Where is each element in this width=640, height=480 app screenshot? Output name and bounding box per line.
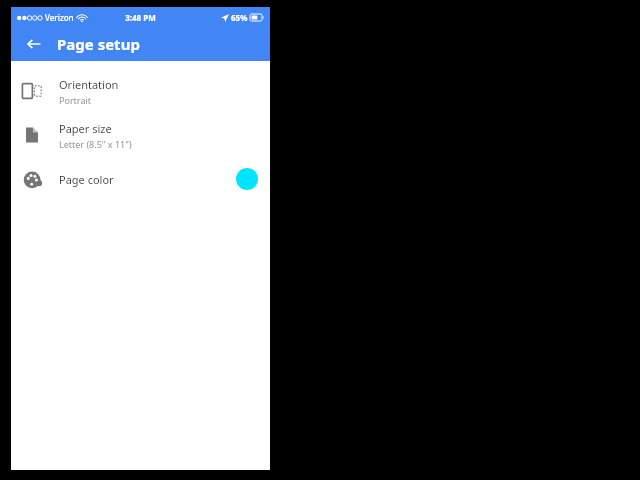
staticText: Letter (8.5" x 11") — [59, 138, 132, 150]
button[interactable]: Orientation — [11, 69, 270, 113]
staticText: 3:48 PM — [125, 12, 156, 23]
staticText: Verizon — [45, 12, 74, 23]
button[interactable]: Page color swatch — [236, 168, 258, 190]
button[interactable]: Back — [19, 29, 49, 59]
staticText: Page setup — [57, 34, 140, 54]
staticText: Orientation — [59, 77, 119, 92]
staticText: 65% — [231, 12, 248, 23]
staticText: Portrait — [59, 94, 92, 106]
staticText: Page color — [59, 172, 114, 187]
button[interactable]: Page color — [11, 157, 270, 201]
button[interactable]: Paper size — [11, 113, 270, 157]
staticText: Paper size — [59, 121, 112, 136]
